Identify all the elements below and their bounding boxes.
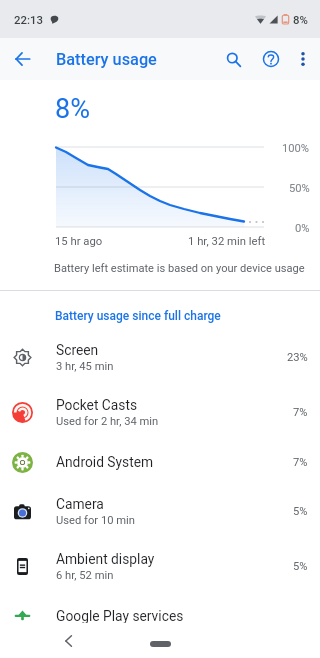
button[interactable]: Search: [217, 38, 249, 80]
staticText: 5%: [293, 560, 308, 573]
staticText: Battery left estimate is based on your d…: [54, 262, 305, 275]
staticText: 3 hr, 45 min: [56, 360, 114, 373]
staticText: 6 hr, 52 min: [56, 569, 114, 582]
staticText: Android System: [56, 454, 154, 470]
button[interactable]: More options: [289, 38, 317, 80]
staticText: Camera: [56, 496, 104, 512]
button[interactable]: Back: [52, 623, 84, 658]
staticText: 22:13: [14, 13, 43, 26]
button[interactable]: Google Play services: [0, 594, 320, 638]
staticText: 0%: [295, 222, 310, 235]
staticText: 50%: [289, 182, 310, 195]
staticText: 5%: [293, 505, 308, 518]
button[interactable]: Battery usage since full charge: [0, 303, 320, 329]
button[interactable]: Camera: [0, 484, 320, 539]
staticText: Used for 2 hr, 34 min: [56, 415, 159, 428]
button[interactable]: Screen: [0, 330, 320, 385]
button[interactable]: Ambient display: [0, 539, 320, 594]
staticText: 100%: [282, 142, 310, 155]
staticText: Screen: [56, 342, 99, 358]
staticText: 8%: [55, 93, 90, 125]
staticText: 15 hr ago: [55, 235, 103, 248]
staticText: Pocket Casts: [56, 397, 138, 413]
button[interactable]: Help: [255, 38, 286, 80]
staticText: Ambient display: [56, 551, 155, 567]
staticText: 1 hr, 32 min left: [188, 235, 266, 248]
button[interactable]: Back: [6, 38, 39, 80]
staticText: Used for 10 min: [56, 514, 135, 527]
staticText: Google Play services: [56, 608, 184, 624]
button[interactable]: Pocket Casts: [0, 385, 320, 440]
staticText: 7%: [293, 456, 308, 469]
button[interactable]: Home: [150, 641, 171, 647]
staticText: 23%: [287, 351, 308, 364]
staticText: 7%: [293, 406, 308, 419]
staticText: Battery usage: [56, 50, 157, 69]
button[interactable]: Android System: [0, 440, 320, 484]
staticText: Battery usage since full charge: [55, 309, 221, 323]
staticText: 8%: [293, 13, 308, 26]
